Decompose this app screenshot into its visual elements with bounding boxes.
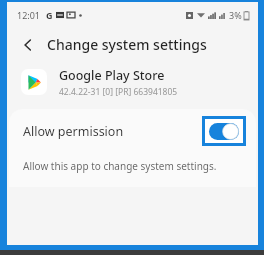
staticText: Google Play Store — [59, 67, 165, 84]
staticText: 3% — [229, 9, 242, 21]
staticText: 12:01 — [17, 9, 41, 21]
staticText: 42.4.22-31 [0] [PR] 663941805 — [59, 86, 178, 98]
staticText: Change system settings — [47, 35, 207, 54]
staticText: G — [46, 9, 53, 21]
button[interactable]: Google Play Store — [7, 61, 258, 103]
staticText: Allow permission — [23, 123, 202, 140]
staticText: Allow this app to change system settings… — [23, 159, 217, 173]
button[interactable]: Back — [15, 32, 41, 58]
button[interactable]: Allow permission toggle — [205, 119, 243, 143]
button[interactable]: Allow permission — [9, 109, 256, 153]
